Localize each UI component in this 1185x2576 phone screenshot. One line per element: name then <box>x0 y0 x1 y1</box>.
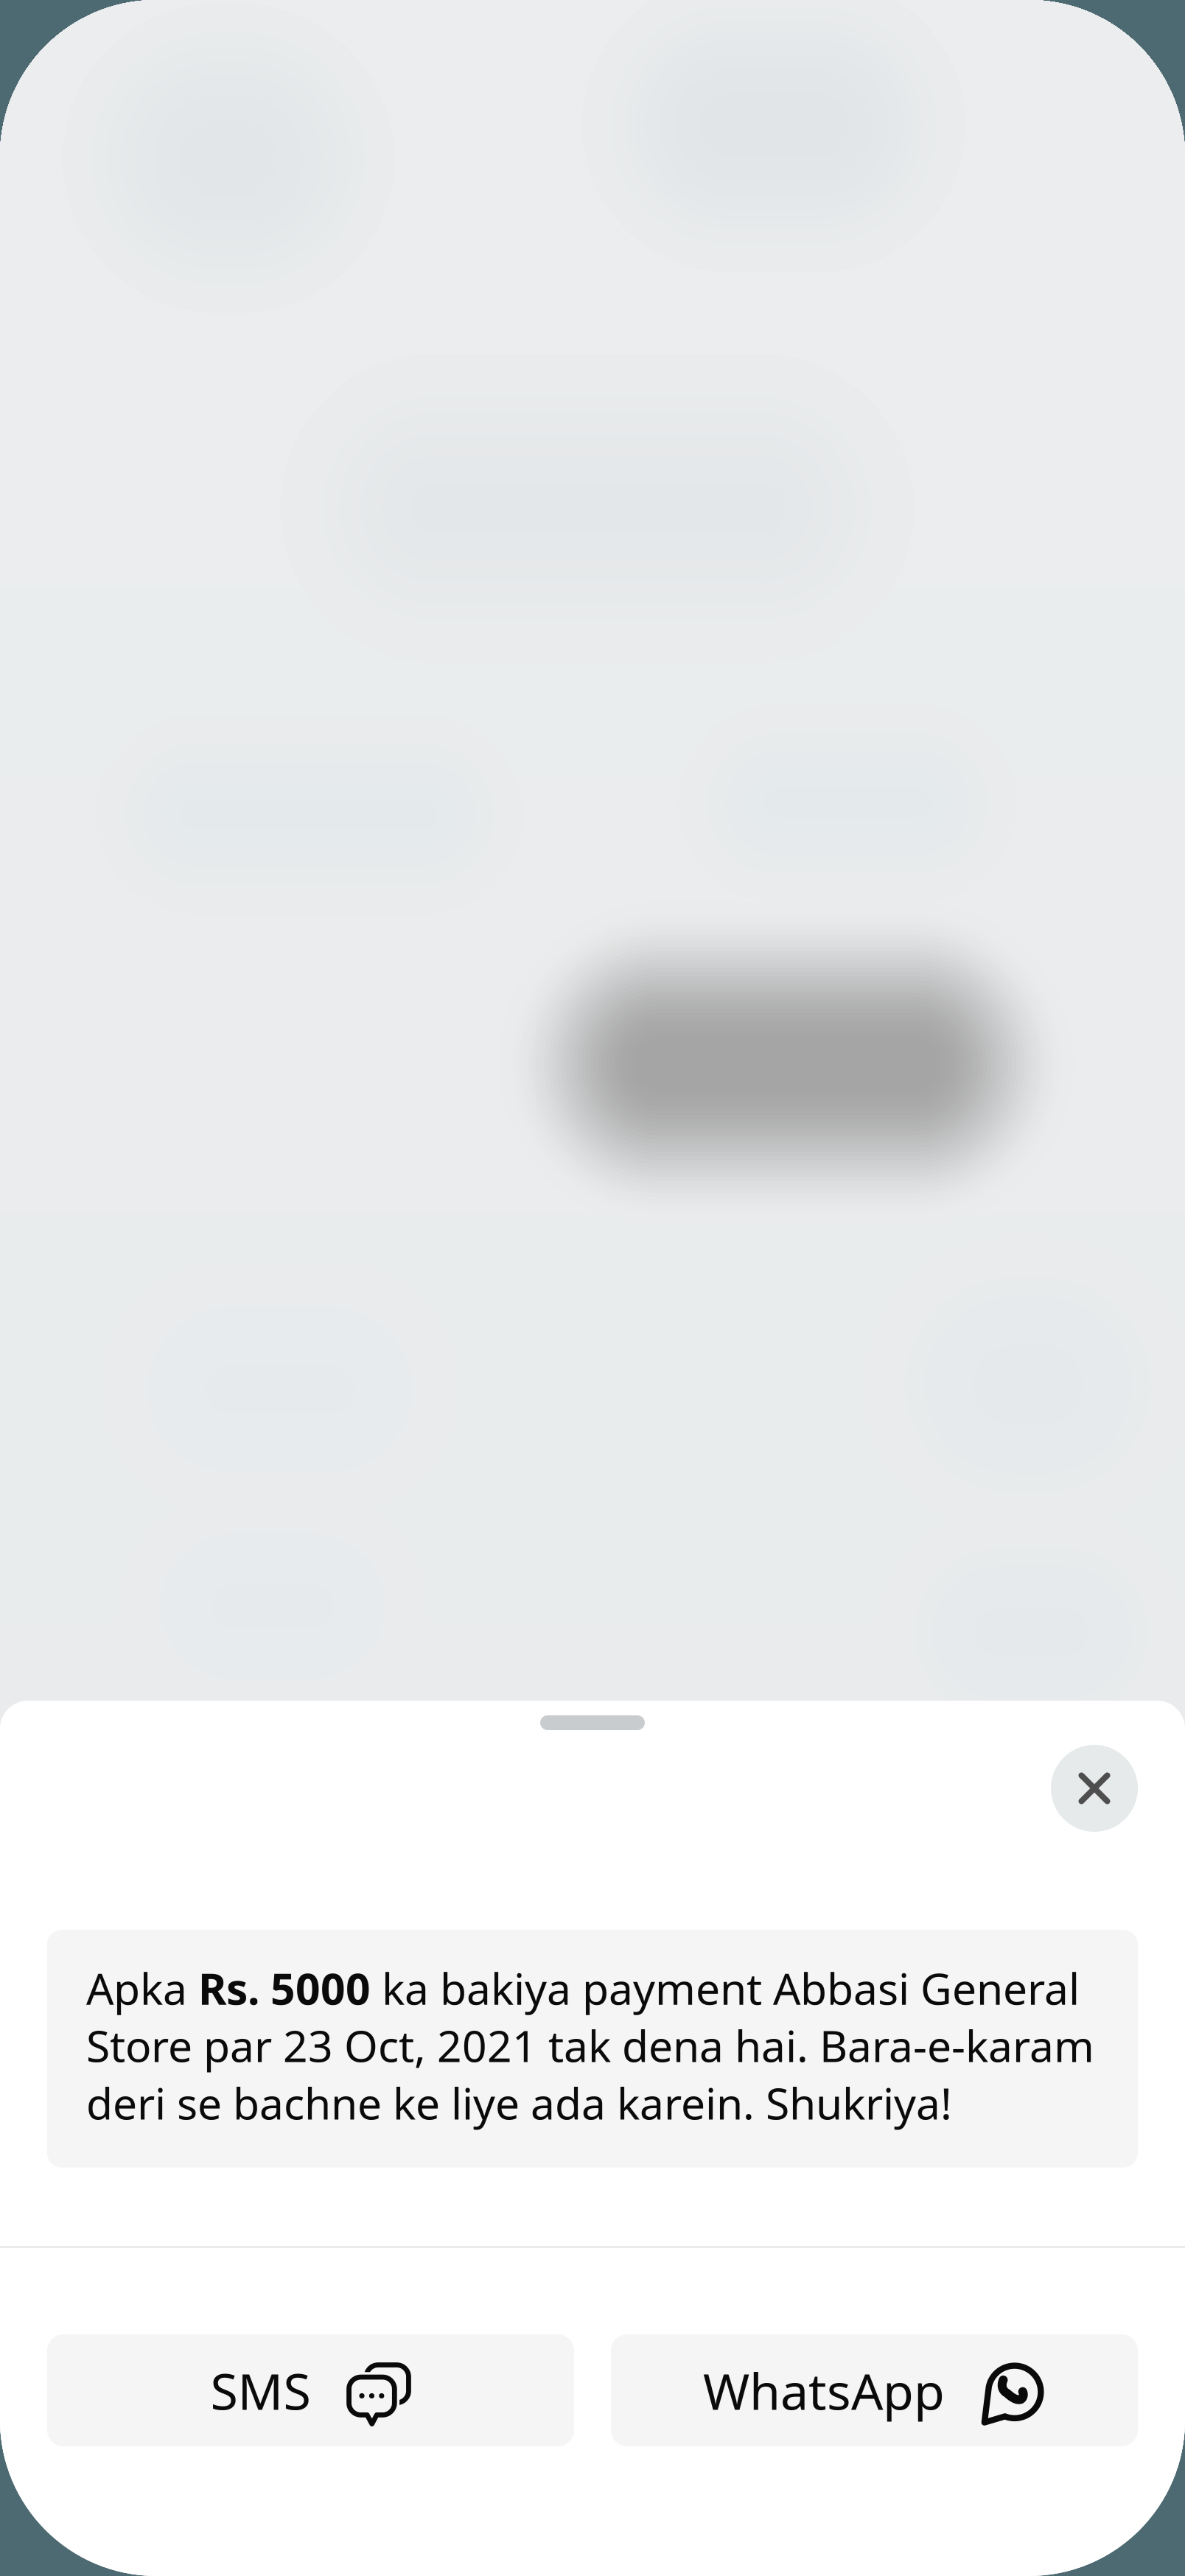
button[interactable]: WhatsApp <box>611 2334 1138 2446</box>
button[interactable]: SMS <box>47 2334 574 2446</box>
staticText: WhatsApp <box>703 2357 945 2424</box>
staticText: Apka Rs. 5000 ka bakiya payment Abbasi G… <box>86 1959 1094 2131</box>
button[interactable]: Close <box>1051 1745 1138 1832</box>
staticText: SMS <box>210 2357 311 2424</box>
